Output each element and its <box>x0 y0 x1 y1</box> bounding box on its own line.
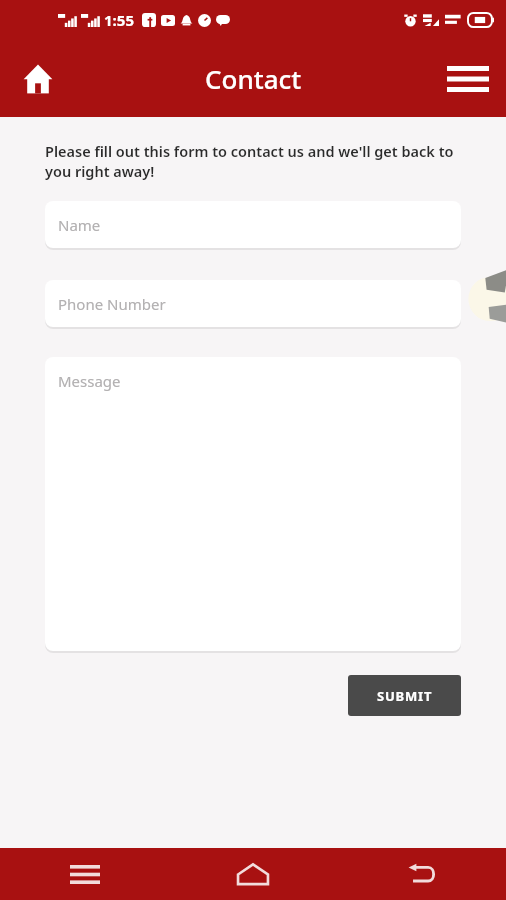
staticText: Phone Number <box>58 294 166 314</box>
button[interactable]: Menu <box>442 53 494 105</box>
button[interactable]: Name <box>45 201 461 248</box>
button[interactable]: Home <box>14 55 62 103</box>
staticText: Please fill out this form to contact us … <box>45 141 461 182</box>
button[interactable]: Phone Number <box>45 280 461 327</box>
button[interactable]: Recents <box>0 848 168 900</box>
button[interactable]: Home <box>168 848 337 900</box>
button[interactable]: Back <box>337 848 506 900</box>
staticText: Message <box>58 371 121 391</box>
button[interactable]: Message <box>45 357 461 651</box>
button[interactable]: SUBMIT <box>348 675 461 716</box>
staticText: SUBMIT <box>377 687 433 705</box>
staticText: Name <box>58 215 101 235</box>
staticText: 1:55 <box>104 10 134 30</box>
staticText: Contact <box>205 61 302 96</box>
